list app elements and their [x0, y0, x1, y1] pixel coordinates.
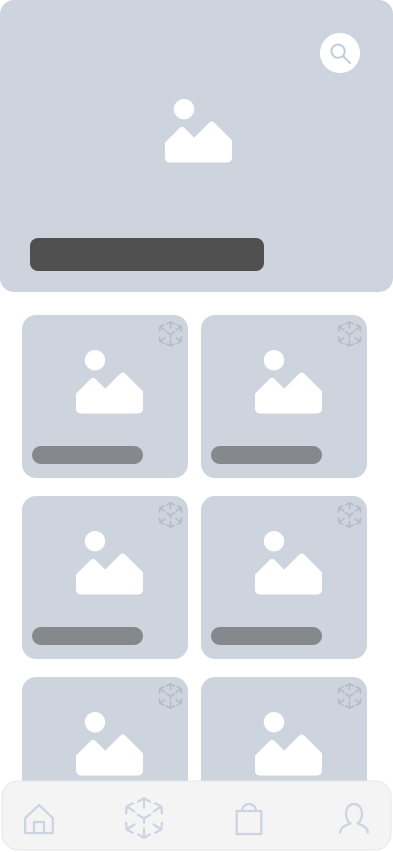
- button[interactable]: Product: [201, 496, 367, 659]
- button[interactable]: Product: [201, 677, 367, 840]
- button[interactable]: Product: [201, 315, 367, 478]
- button[interactable]: Profile: [328, 781, 380, 850]
- button[interactable]: Bag: [223, 781, 275, 850]
- button[interactable]: Product: [22, 677, 188, 840]
- button[interactable]: Product: [22, 496, 188, 659]
- button[interactable]: Home: [13, 781, 65, 850]
- button[interactable]: AR View: [118, 781, 170, 850]
- button[interactable]: Search: [320, 33, 360, 73]
- button[interactable]: Product: [22, 315, 188, 478]
